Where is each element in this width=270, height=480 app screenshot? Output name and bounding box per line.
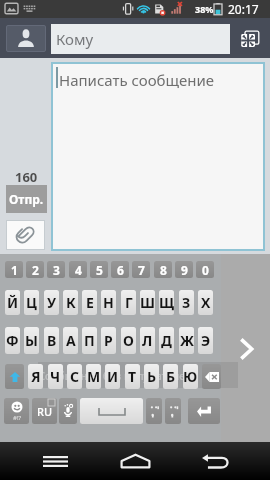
- staticText: Ф: [6, 331, 19, 350]
- button[interactable]: Т: [125, 364, 140, 389]
- staticText: У: [47, 293, 57, 312]
- button[interactable]: А: [63, 327, 78, 354]
- button[interactable]: Ю: [183, 364, 198, 389]
- button[interactable]: Л: [140, 327, 155, 354]
- button[interactable]: Expand keyboard: [229, 332, 263, 366]
- button[interactable]: RU: [32, 398, 57, 424]
- button[interactable]: 7: [132, 261, 150, 278]
- button[interactable]: 5: [90, 261, 108, 278]
- button[interactable]: Ч: [48, 364, 63, 389]
- staticText: А: [66, 331, 76, 350]
- staticText: Х: [201, 293, 211, 312]
- staticText: Н: [103, 293, 114, 312]
- button[interactable]: 6: [111, 261, 129, 278]
- staticText: В: [47, 331, 57, 350]
- staticText: 38%: [195, 3, 214, 15]
- staticText: Э: [201, 331, 211, 350]
- staticText: Р: [104, 331, 113, 350]
- staticText: #!?: [13, 414, 22, 422]
- button[interactable]: У: [44, 290, 59, 315]
- button[interactable]: Enter: [188, 398, 220, 424]
- staticText: Е: [86, 293, 94, 312]
- button[interactable]: Insert template: [235, 25, 265, 55]
- staticText: П: [84, 331, 95, 350]
- button[interactable]: Ц: [24, 290, 39, 315]
- button[interactable]: Ф: [5, 327, 20, 354]
- button[interactable]: 9: [175, 261, 193, 278]
- button[interactable]: Shift: [5, 364, 24, 389]
- staticText: З: [182, 293, 191, 312]
- staticText: К: [66, 293, 76, 312]
- button[interactable]: М: [86, 364, 101, 389]
- button[interactable]: Ж: [179, 327, 194, 354]
- button[interactable]: Emoji and symbols: [4, 398, 29, 424]
- staticText: 0: [202, 262, 209, 278]
- button[interactable]: Attach file: [6, 220, 45, 250]
- staticText: Ь: [147, 367, 157, 386]
- staticText: И: [107, 367, 119, 386]
- button[interactable]: О: [121, 327, 136, 354]
- staticText: Я: [31, 367, 41, 386]
- staticText: 9: [181, 262, 188, 278]
- staticText: 1: [11, 262, 18, 278]
- staticText: Ч: [50, 367, 61, 386]
- button[interactable]: Voice input: [59, 398, 77, 424]
- button[interactable]: Щ: [159, 290, 174, 315]
- button[interactable]: 1: [5, 261, 23, 278]
- button[interactable]: Кому: [51, 24, 230, 54]
- button[interactable]: И: [105, 364, 120, 389]
- button[interactable]: Menu: [32, 442, 78, 480]
- button[interactable]: С: [67, 364, 82, 389]
- staticText: Л: [142, 331, 153, 350]
- button[interactable]: Г: [121, 290, 136, 315]
- button[interactable]: [146, 398, 162, 424]
- button[interactable]: [165, 398, 181, 424]
- staticText: 5: [96, 262, 103, 278]
- staticText: Сообщение без получателей сохранено как …: [38, 368, 238, 383]
- staticText: 6: [117, 262, 124, 278]
- button[interactable]: Choose contact: [6, 25, 46, 52]
- button[interactable]: П: [82, 327, 97, 354]
- staticText: 4: [75, 262, 82, 278]
- button[interactable]: Ш: [140, 290, 155, 315]
- button[interactable]: Отпр.: [6, 185, 47, 213]
- button[interactable]: К: [63, 290, 78, 315]
- button[interactable]: Б: [163, 364, 178, 389]
- button[interactable]: Д: [159, 327, 174, 354]
- staticText: Й: [7, 293, 19, 312]
- button[interactable]: Р: [101, 327, 116, 354]
- staticText: Ж: [180, 331, 194, 350]
- button[interactable]: 3: [47, 261, 65, 278]
- staticText: 160: [15, 168, 38, 186]
- staticText: М: [87, 367, 101, 386]
- button[interactable]: Написать сообщение: [51, 62, 265, 251]
- staticText: 7: [138, 262, 145, 278]
- button[interactable]: Е: [82, 290, 97, 315]
- staticText: Б: [166, 367, 176, 386]
- button[interactable]: Э: [198, 327, 213, 354]
- button[interactable]: Home: [112, 442, 158, 480]
- staticText: 3: [53, 262, 60, 278]
- staticText: Ш: [140, 293, 155, 312]
- button[interactable]: Ы: [24, 327, 39, 354]
- button[interactable]: 0: [196, 261, 214, 278]
- staticText: Ц: [26, 293, 37, 312]
- button[interactable]: Х: [198, 290, 213, 315]
- button[interactable]: Я: [28, 364, 43, 389]
- staticText: О: [123, 331, 134, 350]
- button[interactable]: Н: [101, 290, 116, 315]
- button[interactable]: Й: [5, 290, 20, 315]
- staticText: Кому: [56, 29, 94, 49]
- staticText: Отпр.: [9, 191, 44, 207]
- button[interactable]: 4: [69, 261, 87, 278]
- button[interactable]: 2: [26, 261, 44, 278]
- button[interactable]: Ь: [144, 364, 159, 389]
- button[interactable]: 8: [154, 261, 172, 278]
- button[interactable]: Backspace: [202, 364, 221, 389]
- staticText: С: [70, 367, 80, 386]
- button[interactable]: Space: [80, 398, 143, 424]
- button[interactable]: Back: [192, 442, 238, 480]
- button[interactable]: В: [44, 327, 59, 354]
- button[interactable]: З: [179, 290, 194, 315]
- staticText: Ю: [183, 367, 198, 386]
